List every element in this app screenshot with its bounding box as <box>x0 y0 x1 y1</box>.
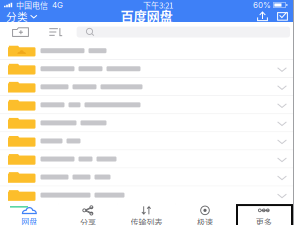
staticText: 60% <box>253 0 271 10</box>
button[interactable]: New folder <box>9 26 32 37</box>
button[interactable]: Folder <box>0 78 293 96</box>
button[interactable]: Folder <box>0 132 293 150</box>
button[interactable]: Folder <box>0 96 293 114</box>
button[interactable]: Sort <box>45 28 67 36</box>
button[interactable]: 传输列表 <box>117 201 176 225</box>
staticText: 分享 <box>80 216 96 225</box>
staticText: 更多 <box>256 216 272 225</box>
button[interactable]: Search <box>77 26 290 37</box>
button[interactable]: Upload <box>257 11 268 21</box>
staticText: 分类 <box>6 8 28 24</box>
staticText: 传输列表 <box>130 216 162 225</box>
button[interactable]: 网盘 <box>0 202 59 225</box>
button[interactable]: 分享 <box>59 201 117 225</box>
button[interactable]: Folder <box>0 168 293 186</box>
button[interactable]: 分类 <box>0 10 41 22</box>
button[interactable]: 更多 <box>234 201 293 225</box>
button[interactable]: Compose <box>277 11 288 21</box>
staticText: 下午3:21 <box>143 0 173 11</box>
staticText: 极速 <box>197 216 213 225</box>
button[interactable]: Folder <box>0 114 293 132</box>
staticText: 中国电信 <box>16 0 48 11</box>
button[interactable]: Folder <box>0 60 293 78</box>
button[interactable]: 极速 <box>176 201 234 225</box>
button[interactable]: Folder <box>0 42 293 60</box>
staticText: 4G <box>52 0 63 10</box>
button[interactable]: Folder <box>0 150 293 168</box>
staticText: 百度网盘 <box>120 6 172 26</box>
button[interactable]: Folder <box>0 186 293 204</box>
staticText: 网盘 <box>21 215 37 225</box>
